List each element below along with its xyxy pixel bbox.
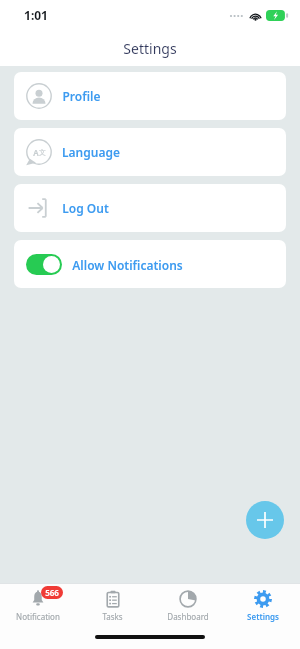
button[interactable]: Log Out: [14, 184, 286, 232]
staticText: Settings: [123, 39, 177, 58]
staticText: A: [33, 147, 39, 158]
staticText: Tasks: [102, 611, 123, 622]
button[interactable]: A: [14, 128, 286, 176]
button[interactable]: Settings: [225, 584, 300, 628]
button[interactable]: 566: [0, 584, 75, 628]
button[interactable]: Tasks: [75, 584, 150, 628]
staticText: 文: [39, 148, 46, 157]
staticText: Log Out: [62, 200, 109, 216]
button[interactable]: Dashboard: [150, 584, 225, 628]
staticText: 566: [45, 587, 59, 598]
staticText: Settings: [247, 611, 279, 622]
button[interactable]: Profile: [14, 72, 286, 120]
button[interactable]: Allow Notifications toggle: [14, 240, 286, 288]
button[interactable]: Allow Notifications toggle: [26, 254, 62, 275]
button[interactable]: Add: [246, 501, 284, 539]
staticText: Profile: [62, 88, 101, 104]
staticText: Language: [62, 144, 120, 160]
staticText: Dashboard: [167, 611, 209, 622]
staticText: Notification: [16, 611, 60, 622]
staticText: 1:01: [24, 7, 48, 23]
staticText: Allow Notifications: [72, 257, 183, 273]
